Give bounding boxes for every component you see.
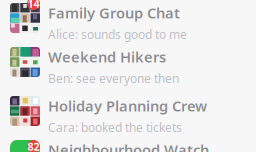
button[interactable]: Holiday Planning Crew (0, 96, 256, 136)
staticText: Ben: see everyone then (48, 70, 179, 86)
button[interactable]: Neighbourhood Watch (0, 140, 256, 152)
staticText: Neighbourhood Watch (48, 140, 209, 152)
staticText: Alice: sounds good to me (48, 26, 187, 42)
staticText: 82 (27, 139, 39, 152)
staticText: Family Group Chat (48, 3, 180, 22)
staticText: Weekend Hikers (48, 47, 166, 66)
staticText: Holiday Planning Crew (48, 96, 207, 115)
button[interactable]: Weekend Hikers (0, 47, 256, 87)
staticText: 14 (27, 0, 39, 11)
staticText: Cara: booked the tickets (48, 119, 182, 135)
button[interactable]: Family Group Chat (0, 3, 256, 43)
